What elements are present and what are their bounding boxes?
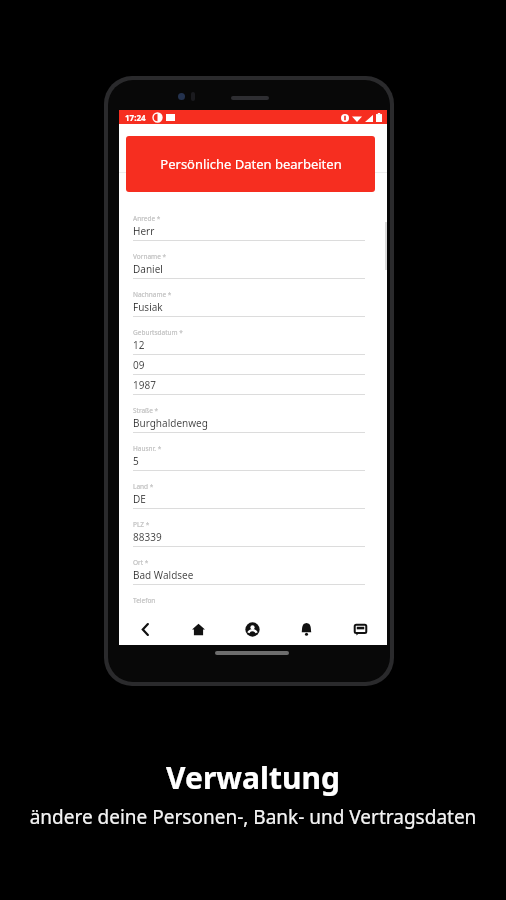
staticText: Bad Waldsee <box>133 568 194 582</box>
staticText: 17:24 <box>125 112 146 123</box>
staticText: 1987 <box>133 378 156 392</box>
button[interactable]: Straße * <box>133 406 365 433</box>
staticText: Straße * <box>133 406 159 415</box>
staticText: Telefon <box>133 596 156 605</box>
staticText: Verwaltung <box>166 757 340 798</box>
staticText: Hausnr. * <box>133 444 162 453</box>
staticText: PLZ * <box>133 520 150 529</box>
button[interactable]: Back <box>119 613 172 645</box>
staticText: Land * <box>133 482 154 491</box>
button[interactable]: Geburtsdatum * <box>133 328 365 395</box>
button[interactable]: Profile <box>225 613 279 645</box>
button[interactable]: Persönliche Daten bearbeiten <box>126 136 375 192</box>
button[interactable]: Ort * <box>133 558 365 585</box>
staticText: Herr <box>133 224 155 238</box>
button[interactable]: Hausnr. * <box>133 444 365 471</box>
staticText: Ort * <box>133 558 149 567</box>
button[interactable]: Land * <box>133 482 365 509</box>
staticText: DE <box>133 492 146 506</box>
staticText: Geburtsdatum * <box>133 328 183 337</box>
staticText: Nachname * <box>133 290 172 299</box>
staticText: ändere deine Personen-, Bank- und Vertra… <box>14 804 492 830</box>
button[interactable]: Nachname * <box>133 290 365 317</box>
button[interactable]: Messages <box>333 613 387 645</box>
staticText: Vorname * <box>133 252 167 261</box>
staticText: Persönliche Daten bearbeiten <box>160 155 342 173</box>
staticText: 12 <box>133 338 145 352</box>
button[interactable]: Anrede * <box>133 214 365 241</box>
staticText: 88339 <box>133 530 162 544</box>
staticText: Daniel <box>133 262 163 276</box>
staticText: Burghaldenweg <box>133 416 208 430</box>
button[interactable]: PLZ * <box>133 520 365 547</box>
staticText: 5 <box>133 454 139 468</box>
staticText: Anrede * <box>133 214 161 223</box>
button[interactable]: Home <box>172 613 225 645</box>
staticText: 09 <box>133 358 145 372</box>
staticText: Fusiak <box>133 300 163 314</box>
button[interactable]: Vorname * <box>133 252 365 279</box>
button[interactable]: Notifications <box>279 613 333 645</box>
